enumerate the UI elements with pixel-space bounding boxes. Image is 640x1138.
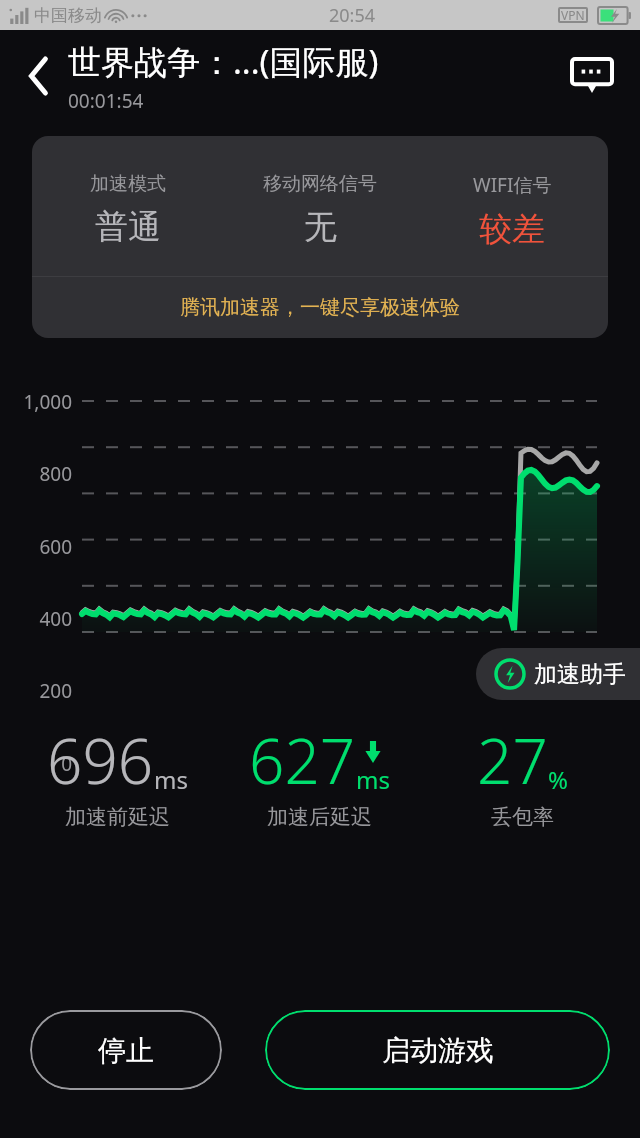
button[interactable]: Back [14,51,64,101]
staticText: % [548,763,568,796]
staticText: 00:01:54 [68,88,144,114]
staticText: 800 [0,461,72,487]
staticText: 较差 [479,208,545,250]
staticText: 加速助手 [534,660,626,689]
staticText: 627 [249,718,356,802]
staticText: 600 [0,534,72,560]
staticText: 696 [47,718,154,802]
button[interactable]: 加速模式 [32,136,608,338]
staticText: 400 [0,606,72,632]
staticText: 普通 [95,206,161,248]
staticText: 中国移动 [34,5,102,26]
staticText: 0 [0,751,72,777]
staticText: 启动游戏 [382,1033,494,1068]
staticText: 移动网络信号 [263,172,377,196]
staticText: 腾讯加速器，一键尽享极速体验 [180,295,460,320]
staticText: 20:54 [329,3,376,28]
staticText: 27 [477,718,548,802]
staticText: WIFI信号 [473,172,552,198]
staticText: 无 [304,206,337,248]
staticText: 丢包率 [491,804,554,830]
staticText: 加速后延迟 [267,804,372,830]
staticText: ms [154,763,188,796]
button[interactable]: 启动游戏 [265,1010,610,1090]
staticText: 加速模式 [90,172,166,196]
staticText: ms [356,763,390,796]
staticText: VPN [561,7,585,23]
staticText: 加速前延迟 [65,804,170,830]
staticText: 200 [0,678,72,704]
button[interactable]: Messages [566,50,618,102]
staticText: 世界战争：...(国际服) [68,39,379,84]
staticText: 停止 [98,1033,154,1068]
button[interactable]: 停止 [30,1010,222,1090]
button[interactable]: 加速助手 [476,648,640,700]
staticText: 1,000 [0,389,72,415]
